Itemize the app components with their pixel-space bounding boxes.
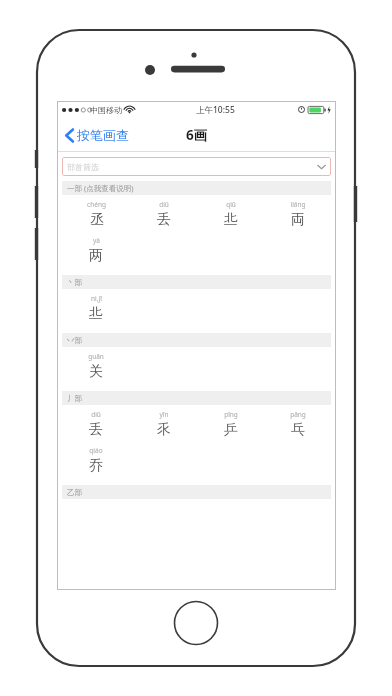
staticText: 乔 <box>89 457 103 475</box>
button[interactable]: 丿部 <box>62 391 331 405</box>
staticText: chéng <box>87 200 106 209</box>
staticText: 上午10:55 <box>196 104 235 116</box>
staticText: nì,jī <box>91 294 102 303</box>
staticText: qiū <box>226 200 236 209</box>
staticText: qiáo <box>89 446 103 455</box>
staticText: 乓 <box>291 421 305 439</box>
staticText: 丠 <box>89 305 103 323</box>
button[interactable]: qiáo <box>87 445 105 476</box>
button[interactable]: 部首筛选 <box>62 157 331 176</box>
staticText: 关 <box>89 363 103 381</box>
staticText: diū <box>159 200 169 209</box>
staticText: yīn <box>159 410 169 419</box>
button[interactable]: diū <box>87 409 105 440</box>
staticText: 乒 <box>224 421 238 439</box>
button[interactable]: guān <box>86 351 106 382</box>
staticText: pīng <box>224 410 238 419</box>
staticText: liǎng <box>290 200 306 209</box>
button[interactable]: diū <box>155 199 173 230</box>
button[interactable]: 一部 (点我查看说明) <box>62 181 331 195</box>
staticText: 丢 <box>157 211 171 229</box>
staticText: 丶部 <box>67 278 82 287</box>
staticText: 丿部 <box>67 394 82 403</box>
button[interactable]: pāng <box>288 409 308 440</box>
staticText: 乑 <box>157 421 171 439</box>
staticText: 丠 <box>224 211 238 229</box>
staticText: 乙部 <box>67 488 82 497</box>
staticText: 两 <box>89 247 103 265</box>
button[interactable]: nì,jī <box>87 293 105 324</box>
staticText: 丷部 <box>67 336 82 345</box>
staticText: 中国移动 <box>90 105 122 115</box>
staticText: yà <box>93 236 100 245</box>
staticText: diū <box>91 410 101 419</box>
button[interactable]: qiū <box>222 199 240 230</box>
button[interactable]: 乙部 <box>62 485 331 499</box>
button[interactable]: 按笔画查 <box>62 124 132 146</box>
button[interactable]: chéng <box>85 199 108 230</box>
button[interactable]: 丷部 <box>62 333 331 347</box>
staticText: 丢 <box>89 421 103 439</box>
staticText: 部首筛选 <box>67 162 99 172</box>
staticText: pāng <box>290 410 306 419</box>
button[interactable]: yà <box>87 235 105 266</box>
button[interactable]: yīn <box>155 409 173 440</box>
button[interactable]: pīng <box>222 409 240 440</box>
button[interactable]: 丶部 <box>62 275 331 289</box>
button[interactable]: liǎng <box>288 199 308 230</box>
staticText: guān <box>88 352 104 361</box>
staticText: 両 <box>291 211 305 229</box>
staticText: 丞 <box>90 211 104 229</box>
staticText: 按笔画查 <box>77 127 129 143</box>
staticText: 6画 <box>186 126 208 144</box>
staticText: 一部 (点我查看说明) <box>67 183 134 193</box>
